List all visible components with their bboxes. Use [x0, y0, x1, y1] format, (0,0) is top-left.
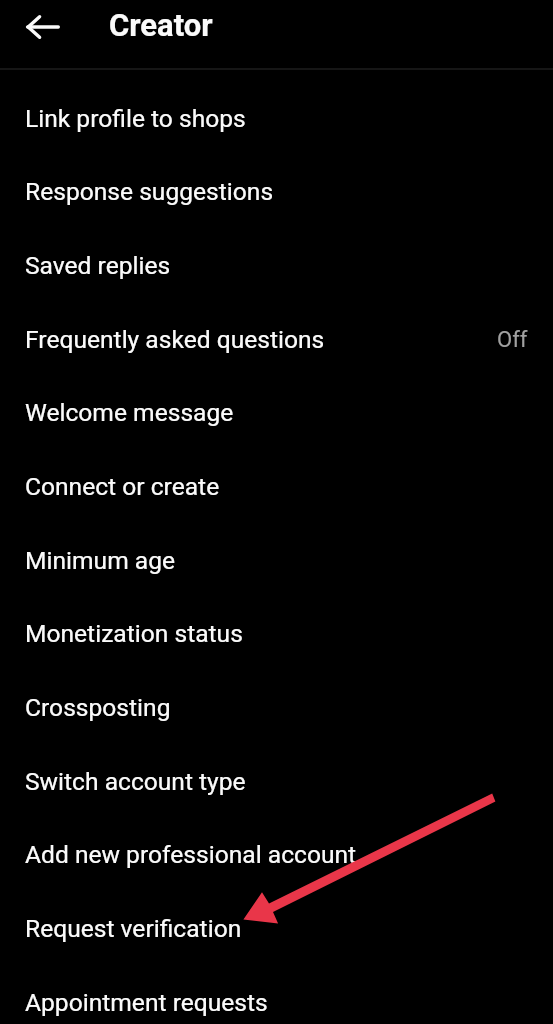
button[interactable]: Connect or create [0, 449, 553, 523]
button[interactable]: Saved replies [0, 228, 553, 302]
button[interactable]: Minimum age [0, 523, 553, 597]
button[interactable]: Request verification [0, 891, 553, 965]
button[interactable]: Appointment requests [0, 965, 553, 1024]
button[interactable]: Monetization status [0, 596, 553, 670]
staticText: Add new professional account [25, 840, 357, 869]
staticText: Request verification [25, 914, 242, 943]
staticText: Off [497, 327, 528, 353]
button[interactable]: Frequently asked questions [0, 302, 553, 376]
staticText: Frequently asked questions [25, 325, 325, 354]
staticText: Connect or create [25, 472, 220, 501]
staticText: Minimum age [25, 546, 176, 575]
button[interactable]: Add new professional account [0, 817, 553, 891]
button[interactable]: Response suggestions [0, 154, 553, 228]
staticText: Response suggestions [25, 177, 274, 206]
button[interactable]: Crossposting [0, 670, 553, 744]
staticText: Creator [109, 7, 213, 43]
staticText: Appointment requests [25, 988, 268, 1017]
button[interactable]: Link profile to shops [0, 81, 553, 155]
button[interactable]: Switch account type [0, 744, 553, 818]
staticText: Crossposting [25, 693, 171, 722]
staticText: Welcome message [25, 398, 234, 427]
button[interactable]: Back [20, 4, 66, 50]
staticText: Switch account type [25, 767, 246, 796]
button[interactable]: Welcome message [0, 375, 553, 449]
staticText: Link profile to shops [25, 104, 246, 133]
staticText: Saved replies [25, 251, 171, 280]
staticText: Monetization status [25, 619, 243, 648]
